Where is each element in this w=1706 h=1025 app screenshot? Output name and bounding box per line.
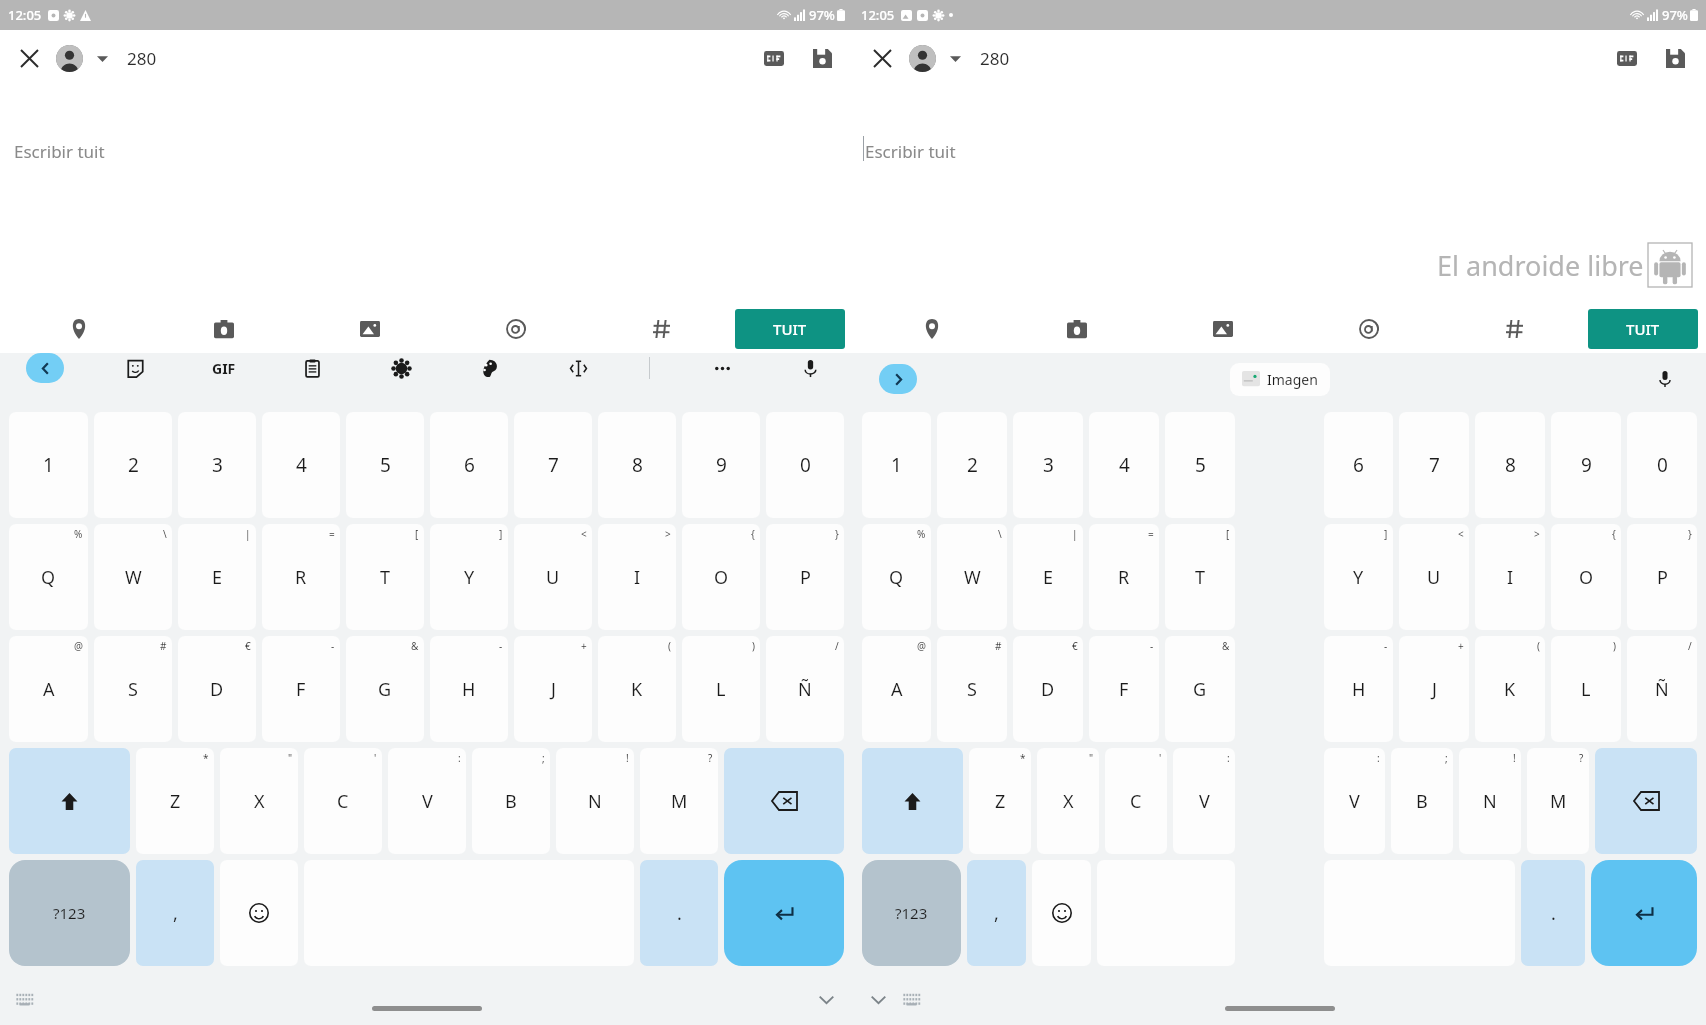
button[interactable]: 7 [1399,412,1469,518]
button[interactable]: Temas [472,353,506,383]
button[interactable]: D [178,636,256,742]
button[interactable]: Imagen [1150,305,1296,353]
button[interactable]: Hashtag [1442,305,1588,353]
button[interactable]: C [1105,748,1167,854]
button[interactable]: Elegir cuenta [91,47,113,69]
button[interactable]: Cámara [1004,305,1150,353]
button[interactable]: Modo texto [561,353,595,383]
button[interactable]: Z [136,748,214,854]
button[interactable]: Cuenta [909,45,936,72]
button[interactable]: A [9,636,88,742]
button[interactable]: Ubicación [859,305,1004,353]
button[interactable]: U [1399,524,1469,630]
button[interactable]: J [514,636,592,742]
button[interactable]: G [1165,636,1235,742]
button[interactable]: Ocultar teclado [861,982,895,1016]
button[interactable]: Mayúsculas [9,748,130,854]
button[interactable]: H [1324,636,1393,742]
button[interactable]: R [1089,524,1159,630]
button[interactable]: I [1475,524,1545,630]
button[interactable]: X [220,748,298,854]
button[interactable]: E [1013,524,1083,630]
button[interactable]: N [556,748,634,854]
button[interactable]: 3 [178,412,256,518]
button[interactable]: Imagen [297,305,443,353]
button[interactable]: Imagen [1242,370,1318,389]
button[interactable]: G [346,636,424,742]
button[interactable]: Cámara [151,305,297,353]
button[interactable]: O [682,524,760,630]
button[interactable]: 7 [514,412,592,518]
button[interactable]: Stickers [118,353,152,383]
button[interactable]: TUIT [1588,309,1698,349]
button[interactable]: Mayúsculas [862,748,963,854]
button[interactable]: D [1013,636,1083,742]
button[interactable]: I [598,524,676,630]
button[interactable]: F [1089,636,1159,742]
button[interactable]: Ñ [766,636,844,742]
button[interactable]: Símbolos [9,860,130,966]
button[interactable]: A [862,636,931,742]
button[interactable]: Hashtag [589,305,735,353]
button[interactable]: Cerrar [14,43,44,73]
button[interactable]: Teclado [895,982,929,1016]
button[interactable]: P [766,524,844,630]
button[interactable]: Mencionar [443,305,589,353]
button[interactable]: R [262,524,340,630]
button[interactable]: Contraer [26,353,64,383]
button[interactable]: Y [1324,524,1393,630]
button[interactable]: 3 [1013,412,1083,518]
button[interactable]: M [1527,748,1589,854]
button[interactable]: S [94,636,172,742]
button[interactable]: Borrar [1595,748,1697,854]
button[interactable]: T [346,524,424,630]
button[interactable]: L [682,636,760,742]
button[interactable]: F [262,636,340,742]
button[interactable]: , [136,860,214,966]
button[interactable]: Intro [724,860,844,966]
button[interactable]: 0 [1627,412,1697,518]
button[interactable]: Emoji [220,860,298,966]
button[interactable]: Intro [1591,860,1697,966]
button[interactable]: E [178,524,256,630]
button[interactable]: Dictado por voz [793,353,827,383]
button[interactable]: V [1324,748,1385,854]
button[interactable]: W [94,524,172,630]
button[interactable]: 1 [9,412,88,518]
button[interactable]: Ubicación [6,305,151,353]
button[interactable]: Símbolos [862,860,961,966]
button[interactable]: M [640,748,718,854]
button[interactable]: Ajustes [384,353,418,383]
button[interactable]: V [388,748,466,854]
button[interactable]: 8 [598,412,676,518]
button[interactable]: 5 [1165,412,1235,518]
button[interactable]: Cerrar [867,43,897,73]
button[interactable]: 0 [766,412,844,518]
button[interactable]: GIF [757,41,791,75]
button[interactable]: 6 [430,412,508,518]
button[interactable]: Elegir cuenta [944,47,966,69]
button[interactable]: T [1165,524,1235,630]
button[interactable]: 9 [682,412,760,518]
button[interactable]: J [1399,636,1469,742]
button[interactable]: S [937,636,1007,742]
button[interactable]: H [430,636,508,742]
button[interactable]: Cuenta [56,45,83,72]
button[interactable]: 6 [1324,412,1393,518]
button[interactable]: 8 [1475,412,1545,518]
button[interactable]: N [1459,748,1521,854]
button[interactable]: K [1475,636,1545,742]
button[interactable]: . [1521,860,1585,966]
button[interactable]: GIF [207,353,241,383]
button[interactable]: Borrar [724,748,844,854]
button[interactable]: TUIT [735,309,845,349]
button[interactable]: L [1551,636,1621,742]
button[interactable]: B [1391,748,1453,854]
button[interactable]: O [1551,524,1621,630]
button[interactable]: 9 [1551,412,1621,518]
button[interactable]: P [1627,524,1697,630]
button[interactable]: Portapapeles [295,353,329,383]
